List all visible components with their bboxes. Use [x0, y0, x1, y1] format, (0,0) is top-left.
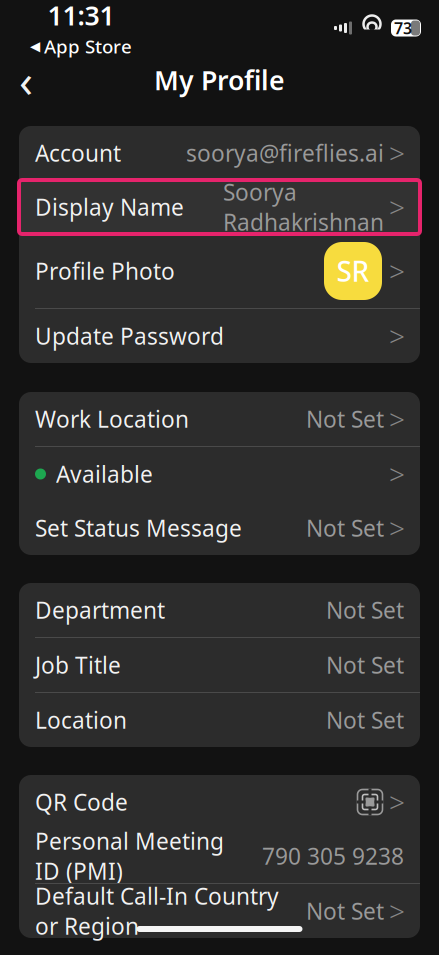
staticText: >	[389, 455, 405, 493]
button[interactable]: Profile Photo	[19, 234, 420, 308]
button[interactable]: Default Call-In Country or Region	[19, 884, 420, 938]
button[interactable]: Location	[19, 693, 420, 747]
staticText: App Store	[44, 34, 132, 59]
button[interactable]: Department	[19, 583, 420, 637]
button[interactable]: Display Name	[19, 180, 420, 234]
staticText: Department	[35, 595, 165, 625]
staticText: 790 305 9238	[262, 841, 404, 871]
staticText: Account	[35, 138, 121, 168]
staticText: ‹	[19, 50, 33, 110]
button[interactable]: Job Title	[19, 638, 420, 692]
staticText: SR	[336, 252, 369, 290]
staticText: My Profile	[154, 62, 285, 98]
button[interactable]: QR Code	[19, 775, 420, 829]
staticText: soorya@fireflies.ai	[186, 138, 384, 168]
staticText: Soorya Radhakrishnan	[223, 177, 384, 237]
staticText: Not Set	[326, 705, 404, 735]
staticText: >	[389, 134, 405, 172]
button[interactable]: Available	[19, 447, 420, 501]
staticText: Profile Photo	[35, 256, 175, 286]
staticText: Not Set	[326, 650, 404, 680]
button[interactable]: Back	[4, 58, 48, 102]
staticText: >	[389, 892, 405, 930]
staticText: Not Set	[306, 896, 384, 926]
staticText: Set Status Message	[35, 513, 242, 543]
button[interactable]: Update Password	[19, 309, 420, 363]
staticText: Display Name	[35, 192, 184, 222]
staticText: Available	[56, 459, 153, 489]
staticText: ◀	[30, 39, 40, 54]
staticText: Job Title	[35, 650, 121, 680]
staticText: >	[389, 783, 405, 821]
staticText: >	[389, 400, 405, 438]
button[interactable]: Personal Meeting ID (PMI)	[19, 829, 420, 883]
staticText: Update Password	[35, 321, 224, 351]
staticText: >	[389, 188, 405, 226]
staticText: >	[389, 509, 405, 547]
button[interactable]: Account	[19, 126, 420, 180]
staticText: Personal Meeting ID (PMI)	[35, 826, 224, 886]
staticText: 73	[394, 17, 412, 39]
staticText: >	[389, 252, 405, 290]
staticText: QR Code	[35, 787, 128, 817]
staticText: Not Set	[306, 404, 384, 434]
staticText: Default Call-In Country or Region	[35, 881, 279, 941]
staticText: 11:31	[47, 0, 114, 33]
button[interactable]: Work Location	[19, 392, 420, 446]
staticText: Location	[35, 705, 127, 735]
staticText: Not Set	[326, 595, 404, 625]
staticText: Work Location	[35, 404, 189, 434]
staticText: >	[389, 317, 405, 355]
button[interactable]: Set Status Message	[19, 501, 420, 555]
staticText: Not Set	[306, 513, 384, 543]
